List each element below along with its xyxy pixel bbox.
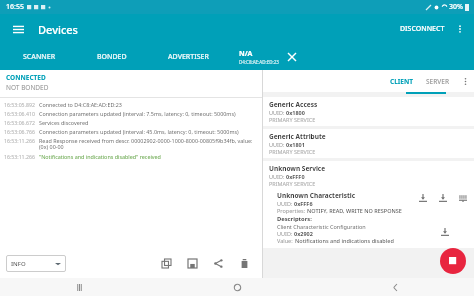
button[interactable]: Close tab bbox=[285, 50, 299, 64]
staticText: Connection parameters updated (interval:… bbox=[39, 128, 239, 135]
button[interactable]: More options bbox=[456, 72, 474, 90]
staticText: 16:53:11.266 bbox=[4, 153, 35, 160]
button[interactable]: N/A bbox=[230, 44, 308, 70]
staticText: UUID: bbox=[269, 173, 286, 180]
button[interactable]: SCANNER bbox=[0, 44, 78, 70]
button[interactable]: Notifications bbox=[456, 191, 470, 205]
button[interactable]: Home bbox=[158, 278, 316, 296]
button[interactable]: SERVER bbox=[420, 74, 456, 89]
staticText: 0x1801 bbox=[286, 141, 305, 148]
staticText: 0x2902 bbox=[294, 230, 313, 237]
staticText: 16:55 bbox=[6, 2, 24, 12]
staticText: UUID: bbox=[277, 200, 294, 207]
button[interactable]: Delete bbox=[236, 255, 252, 271]
button[interactable]: INFO bbox=[6, 255, 66, 272]
staticText: Services discovered bbox=[39, 119, 89, 126]
button[interactable]: ADVERTISER bbox=[146, 44, 230, 70]
staticText: 16:53:06.766 bbox=[4, 128, 35, 135]
staticText: UUID: bbox=[269, 141, 286, 148]
button[interactable]: Recents bbox=[0, 278, 158, 296]
staticText: N/A bbox=[239, 49, 253, 59]
staticText: Descriptors: bbox=[277, 215, 312, 223]
button[interactable]: CLIENT bbox=[384, 74, 420, 89]
staticText: 16:53:05.892 bbox=[4, 101, 35, 108]
staticText: 16:53:06.410 bbox=[4, 110, 35, 117]
staticText: 0xFFF6 bbox=[294, 200, 313, 207]
button[interactable]: Copy bbox=[158, 255, 174, 271]
staticText: Notifications and indications disabled bbox=[295, 237, 394, 244]
staticText: 0x1800 bbox=[286, 109, 305, 116]
staticText: PRIMARY SERVICE bbox=[269, 116, 316, 123]
button[interactable]: Record bbox=[440, 248, 466, 274]
staticText: 16:53:06.672 bbox=[4, 119, 35, 126]
button[interactable]: Share bbox=[210, 255, 226, 271]
button[interactable]: DISCONNECT bbox=[395, 20, 450, 38]
staticText: 0xFFF0 bbox=[286, 173, 305, 180]
staticText: Client Characteristic Configuration bbox=[277, 223, 366, 230]
button[interactable]: Open navigation drawer bbox=[8, 19, 28, 39]
staticText: ADVERTISER bbox=[168, 52, 209, 62]
staticText: 16:53:11.266 bbox=[4, 137, 35, 144]
button[interactable]: Write bbox=[436, 191, 450, 205]
staticText: UUID: bbox=[277, 230, 294, 237]
staticText: Unknown Service bbox=[269, 164, 326, 173]
button[interactable]: Read descriptor bbox=[438, 225, 452, 239]
staticText: NOT BONDED bbox=[6, 83, 49, 92]
staticText: SERVER bbox=[426, 77, 450, 86]
button[interactable]: More options bbox=[450, 19, 470, 39]
staticText: DISCONNECT bbox=[400, 24, 445, 34]
staticText: Generic Attribute bbox=[269, 132, 326, 141]
button[interactable]: Back bbox=[316, 278, 474, 296]
staticText: Connected to D4:C8:AE:AD:ED:23 bbox=[39, 101, 122, 108]
button[interactable]: Read bbox=[416, 191, 430, 205]
staticText: BONDED bbox=[97, 52, 127, 62]
staticText: Value: bbox=[277, 237, 295, 244]
staticText: 30% bbox=[449, 2, 463, 12]
staticText: Read Response received from descr. 00002… bbox=[39, 137, 258, 151]
staticText: Connection parameters updated (interval:… bbox=[39, 110, 236, 117]
staticText: NOTIFY, READ, WRITE NO RESPONSE bbox=[307, 207, 402, 214]
staticText: SCANNER bbox=[23, 52, 56, 62]
staticText: Unknown Characteristic bbox=[277, 191, 356, 200]
button[interactable]: BONDED bbox=[78, 44, 146, 70]
staticText: PRIMARY SERVICE bbox=[269, 148, 316, 155]
staticText: Properties: bbox=[277, 207, 307, 214]
staticText: UUID: bbox=[269, 109, 286, 116]
staticText: D4:C8:AE:AD:ED:23 bbox=[239, 59, 279, 65]
staticText: CLIENT bbox=[390, 77, 414, 86]
staticText: PRIMARY SERVICE bbox=[269, 180, 316, 187]
staticText: CONNECTED bbox=[6, 73, 46, 82]
button[interactable]: Save bbox=[184, 255, 200, 271]
staticText: INFO bbox=[11, 260, 26, 268]
staticText: Devices bbox=[38, 22, 78, 37]
staticText: "Notifications and indications disabled"… bbox=[39, 153, 161, 160]
staticText: Generic Access bbox=[269, 100, 318, 109]
